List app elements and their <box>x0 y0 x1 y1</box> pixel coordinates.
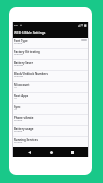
staticText: UI <box>14 96 17 99</box>
button[interactable]: Factory Kit testing <box>12 49 89 59</box>
button[interactable]: Sync <box>12 104 89 114</box>
button[interactable]: Battery Saver <box>12 60 89 70</box>
staticText: Block/Unblock Numbers <box>14 72 48 76</box>
staticText: Mi account <box>14 83 30 87</box>
button[interactable]: Font Type <box>12 38 89 48</box>
staticText: System <box>14 129 23 132</box>
staticText: System <box>14 140 23 143</box>
button[interactable]: Back <box>24 147 34 157</box>
button[interactable]: Root Apps <box>12 93 89 103</box>
button[interactable]: Block/Unblock Numbers <box>12 71 89 81</box>
button[interactable]: Battery usage <box>12 126 89 136</box>
staticText: Battery usage <box>14 127 34 131</box>
button[interactable]: Recent apps <box>67 147 77 157</box>
staticText: Running Services <box>14 138 38 142</box>
staticText: Settings <box>14 74 24 77</box>
staticText: UI <box>14 85 17 88</box>
staticText: Settings <box>14 63 24 66</box>
staticText: System <box>14 118 23 121</box>
staticText: UI <box>14 107 17 110</box>
staticText: WEB 6 Bible Settings <box>14 31 46 35</box>
staticText: Phone vibrate <box>14 116 34 120</box>
button[interactable]: Mi account <box>12 82 89 92</box>
button[interactable]: Phone vibrate <box>12 115 89 125</box>
button[interactable]: Home <box>46 147 56 157</box>
button[interactable]: Running Services <box>12 137 89 147</box>
staticText: 9:41 <box>14 24 19 27</box>
staticText: Sync <box>14 105 21 109</box>
staticText: Battery Saver <box>14 61 33 65</box>
staticText: System <box>14 41 23 44</box>
staticText: Root Apps <box>14 94 29 98</box>
staticText: Font Type <box>14 39 28 43</box>
staticText: Factory Kit testing <box>14 50 40 54</box>
staticText: Settings <box>14 52 24 55</box>
